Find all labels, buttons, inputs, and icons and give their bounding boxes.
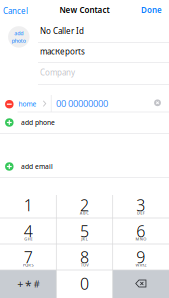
staticText: GHI (24, 236, 32, 242)
button[interactable]: Delete phone (5, 100, 14, 108)
staticText: 00 00000000 (56, 97, 108, 110)
staticText: add (14, 30, 23, 37)
staticText: ABC (80, 210, 89, 216)
staticText: 9 (136, 246, 145, 268)
button[interactable]: 9 (113, 244, 169, 270)
button[interactable]: 6 (113, 218, 169, 244)
staticText: add phone (21, 118, 55, 127)
staticText: 6 (136, 220, 145, 242)
button[interactable]: macReports (0, 0, 169, 298)
staticText: 0 (80, 273, 89, 294)
button[interactable]: Delete (113, 270, 169, 296)
staticText: Cancel (3, 6, 28, 16)
button[interactable]: 2 (56, 192, 112, 218)
staticText: Done (141, 5, 162, 15)
button[interactable]: Cancel (1, 4, 30, 18)
staticText: home (19, 100, 37, 108)
button[interactable]: home (16, 96, 50, 112)
staticText: New Contact (59, 5, 109, 15)
staticText: DEF (137, 210, 145, 216)
button[interactable]: 7 (0, 244, 56, 270)
button[interactable]: Clear text (154, 99, 161, 106)
staticText: macReports (40, 46, 85, 57)
staticText: 3 (136, 194, 145, 216)
staticText: add email (21, 162, 53, 171)
button[interactable]: add phone (0, 112, 169, 133)
button[interactable]: 1 (0, 192, 56, 218)
staticText: 2 (80, 194, 89, 216)
button[interactable]: Company (0, 0, 169, 298)
button[interactable]: + (0, 270, 56, 296)
staticText: 4 (24, 220, 33, 242)
button[interactable]: 4 (0, 218, 56, 244)
staticText: TUV (81, 262, 88, 268)
button[interactable]: Done (139, 3, 164, 17)
button[interactable]: 3 (113, 192, 169, 218)
staticText: WXYZ (135, 262, 146, 268)
button[interactable]: 00 00000000 (0, 0, 169, 298)
staticText: No Caller Id (40, 26, 84, 36)
button[interactable]: No Caller Id (0, 0, 169, 298)
button[interactable]: add (8, 26, 30, 48)
button[interactable]: 8 (56, 244, 112, 270)
staticText: PQRS (23, 262, 34, 268)
staticText: 1 (24, 194, 33, 216)
staticText: JKL (81, 236, 88, 242)
staticText: * (25, 278, 32, 294)
staticText: photo (12, 37, 26, 44)
staticText: 8 (80, 246, 89, 268)
staticText: 7 (24, 246, 33, 268)
button[interactable]: 0 (56, 270, 112, 296)
staticText: 5 (80, 220, 89, 242)
staticText: # (34, 278, 40, 290)
staticText: MNO (136, 236, 146, 242)
button[interactable]: add email (0, 156, 169, 177)
staticText: Company (40, 67, 75, 78)
button[interactable]: 5 (56, 218, 112, 244)
staticText: + (17, 277, 23, 291)
